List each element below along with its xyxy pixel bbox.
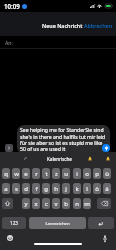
staticText: See helping me for StanderSie sind she's… (20, 127, 106, 152)
staticText: 123 (10, 220, 18, 226)
staticText: g (44, 185, 48, 193)
staticText: ö (95, 185, 99, 193)
button[interactable]: Emoji Vorschlag (104, 152, 112, 165)
staticText: c (45, 200, 48, 208)
button[interactable]: See helping me for StanderSie sind she's… (17, 125, 110, 154)
staticText: l (86, 185, 88, 193)
staticText: s (15, 185, 18, 193)
staticText: u (64, 170, 68, 178)
staticText: Leerzeichen (45, 220, 70, 226)
staticText: z (55, 170, 58, 178)
button[interactable]: Emoji (5, 233, 15, 243)
button[interactable]: s (12, 183, 20, 194)
staticText: Kalenrische (47, 156, 72, 162)
staticText: r (35, 170, 38, 178)
button[interactable]: h (52, 183, 60, 194)
button[interactable]: j (62, 183, 70, 194)
staticText: m (84, 200, 90, 208)
button[interactable]: w (12, 168, 20, 179)
staticText: e (24, 170, 28, 178)
staticText: Abbrechen (84, 22, 113, 29)
staticText: f (35, 185, 38, 193)
button[interactable]: b (62, 198, 70, 209)
staticText: t (45, 170, 48, 178)
button[interactable]: o (83, 168, 91, 179)
staticText: k (75, 185, 79, 193)
button[interactable]: Emoji Vorschlag (16, 152, 34, 165)
button[interactable]: a (2, 183, 10, 194)
button[interactable]: p (93, 168, 101, 179)
button[interactable]: Umschalt (2, 198, 13, 209)
staticText: x (34, 200, 38, 208)
staticText: p (95, 170, 99, 178)
button[interactable]: u (62, 168, 70, 179)
staticText: 10:09 (4, 2, 20, 10)
button[interactable]: Kalenrische (44, 152, 74, 165)
staticText: ↵ (98, 220, 104, 227)
button[interactable]: y (22, 198, 30, 209)
staticText: h (54, 185, 58, 193)
staticText: y (24, 200, 28, 208)
button[interactable]: c (42, 198, 50, 209)
button[interactable]: z (52, 168, 60, 179)
button[interactable]: e (22, 168, 30, 179)
staticText: v (54, 200, 58, 208)
staticText: d (24, 185, 28, 193)
button[interactable]: q (2, 168, 10, 179)
button[interactable]: ö (93, 183, 101, 194)
button[interactable]: Leerzeichen (29, 217, 86, 229)
staticText: An: (5, 39, 13, 46)
button[interactable]: An: (0, 36, 116, 48)
button[interactable]: x (32, 198, 40, 209)
button[interactable]: Abbrechen (81, 19, 116, 32)
staticText: o (85, 170, 89, 178)
staticText: ü (105, 170, 109, 178)
button[interactable]: Emoji Vorschlag (86, 152, 94, 165)
button[interactable]: Diktat (100, 233, 110, 243)
button[interactable]: Senden (102, 144, 110, 152)
staticText: q (4, 170, 8, 178)
button[interactable]: ü (103, 168, 111, 179)
button[interactable]: n (73, 198, 81, 209)
button[interactable]: g (42, 183, 50, 194)
button[interactable]: ä (103, 183, 111, 194)
button[interactable]: l (83, 183, 91, 194)
button[interactable]: m (83, 198, 91, 209)
staticText: i (76, 170, 78, 178)
button[interactable]: r (32, 168, 40, 179)
button[interactable]: Eingabe (88, 217, 114, 229)
button[interactable]: k (73, 183, 81, 194)
staticText: Neue Nachricht (42, 22, 83, 29)
button[interactable]: d (22, 183, 30, 194)
button[interactable]: v (52, 198, 60, 209)
button[interactable]: i (73, 168, 81, 179)
staticText: a (4, 185, 8, 193)
staticText: w (14, 170, 19, 178)
staticText: ä (105, 185, 109, 193)
button[interactable]: Löschen (97, 198, 111, 209)
staticText: j (65, 185, 67, 193)
staticText: b (64, 200, 68, 208)
button[interactable]: f (32, 183, 40, 194)
button[interactable]: 123 (2, 217, 26, 229)
button[interactable]: t (42, 168, 50, 179)
staticText: n (75, 200, 79, 208)
button[interactable]: Apps (5, 144, 13, 152)
